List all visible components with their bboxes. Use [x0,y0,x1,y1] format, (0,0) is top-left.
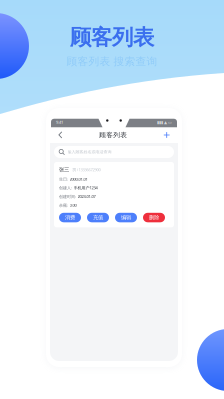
button[interactable]: 充值 [87,213,109,222]
staticText: 充值 [93,214,103,221]
staticText: 顾客列表 [70,24,154,51]
staticText: 创建时间: [59,194,76,199]
staticText: 创建人: [59,185,72,190]
button[interactable]: Back [54,128,67,142]
staticText: (男) 13336672900 [71,167,100,172]
staticText: 0.00 [69,203,76,208]
button[interactable]: Add customer [159,129,174,141]
staticText: 2023-01-07 [77,194,95,199]
button[interactable]: 消费 [59,213,81,222]
staticText: 顾客列表 [99,131,127,139]
button[interactable]: 删除 [143,213,165,222]
staticText: 生日: [59,176,68,182]
staticText: 9:41 [56,120,63,125]
staticText: 删除 [149,214,159,221]
staticText: 2000-01-01 [69,176,87,182]
staticText: 编辑 [121,214,131,221]
staticText: 余额: [59,203,68,208]
staticText: 消费 [65,214,75,221]
button[interactable]: 编辑 [115,213,137,222]
staticText: 张三 [59,166,69,173]
staticText: ▮▮▮ ▲ ▭ [157,120,172,124]
staticText: 输入顾客姓名或电话查询 [67,149,111,154]
staticText: 手机用户1234 [73,185,97,190]
staticText: 顾客列表 搜索查询 [66,55,157,68]
